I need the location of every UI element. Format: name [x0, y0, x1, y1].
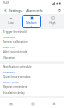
staticText: Automatic	[3, 35, 16, 38]
staticText: Weekdays	[3, 70, 15, 73]
button[interactable]: Profile	[43, 99, 64, 108]
button[interactable]: Repeat reminders	[0, 84, 64, 90]
button[interactable]: Quiet hours window	[0, 74, 64, 84]
button[interactable]: Back	[2, 7, 8, 13]
staticText: Escalation delay	[3, 91, 25, 95]
staticText: Every 12 h	[3, 45, 16, 48]
button[interactable]: Vibration	[0, 55, 64, 61]
staticText: Low	[2, 21, 20, 25]
staticText: Alert sound mode	[3, 50, 28, 54]
staticText: High	[43, 21, 62, 25]
button[interactable]: Low	[2, 15, 20, 28]
staticText: Settings · Alarm info	[9, 8, 56, 12]
button[interactable]: Notification schedule	[0, 64, 64, 74]
button[interactable]: More options	[56, 7, 62, 13]
staticText: Trigger threshold	[3, 30, 27, 34]
staticText: Repeat reminders	[3, 85, 28, 89]
button[interactable]: Escalation delay	[0, 90, 64, 96]
staticText: Quiet hours window	[3, 75, 31, 79]
staticText: 9:41	[3, 1, 10, 5]
staticText: Notification schedule	[3, 65, 32, 69]
button[interactable]: Trigger threshold	[0, 29, 64, 39]
button[interactable]: High	[43, 15, 62, 28]
button[interactable]: Alert sound mode	[0, 49, 64, 55]
staticText: Sensor calibration	[3, 40, 28, 44]
staticText: 22:00 – 07:00	[3, 80, 19, 83]
staticText: Vibration	[3, 56, 16, 60]
button[interactable]: Sensor calibration	[0, 39, 64, 49]
staticText: Medium	[22, 21, 41, 25]
button[interactable]: Medium	[22, 15, 41, 28]
button[interactable]: Alerts	[22, 99, 43, 108]
button[interactable]: Home	[0, 99, 22, 108]
